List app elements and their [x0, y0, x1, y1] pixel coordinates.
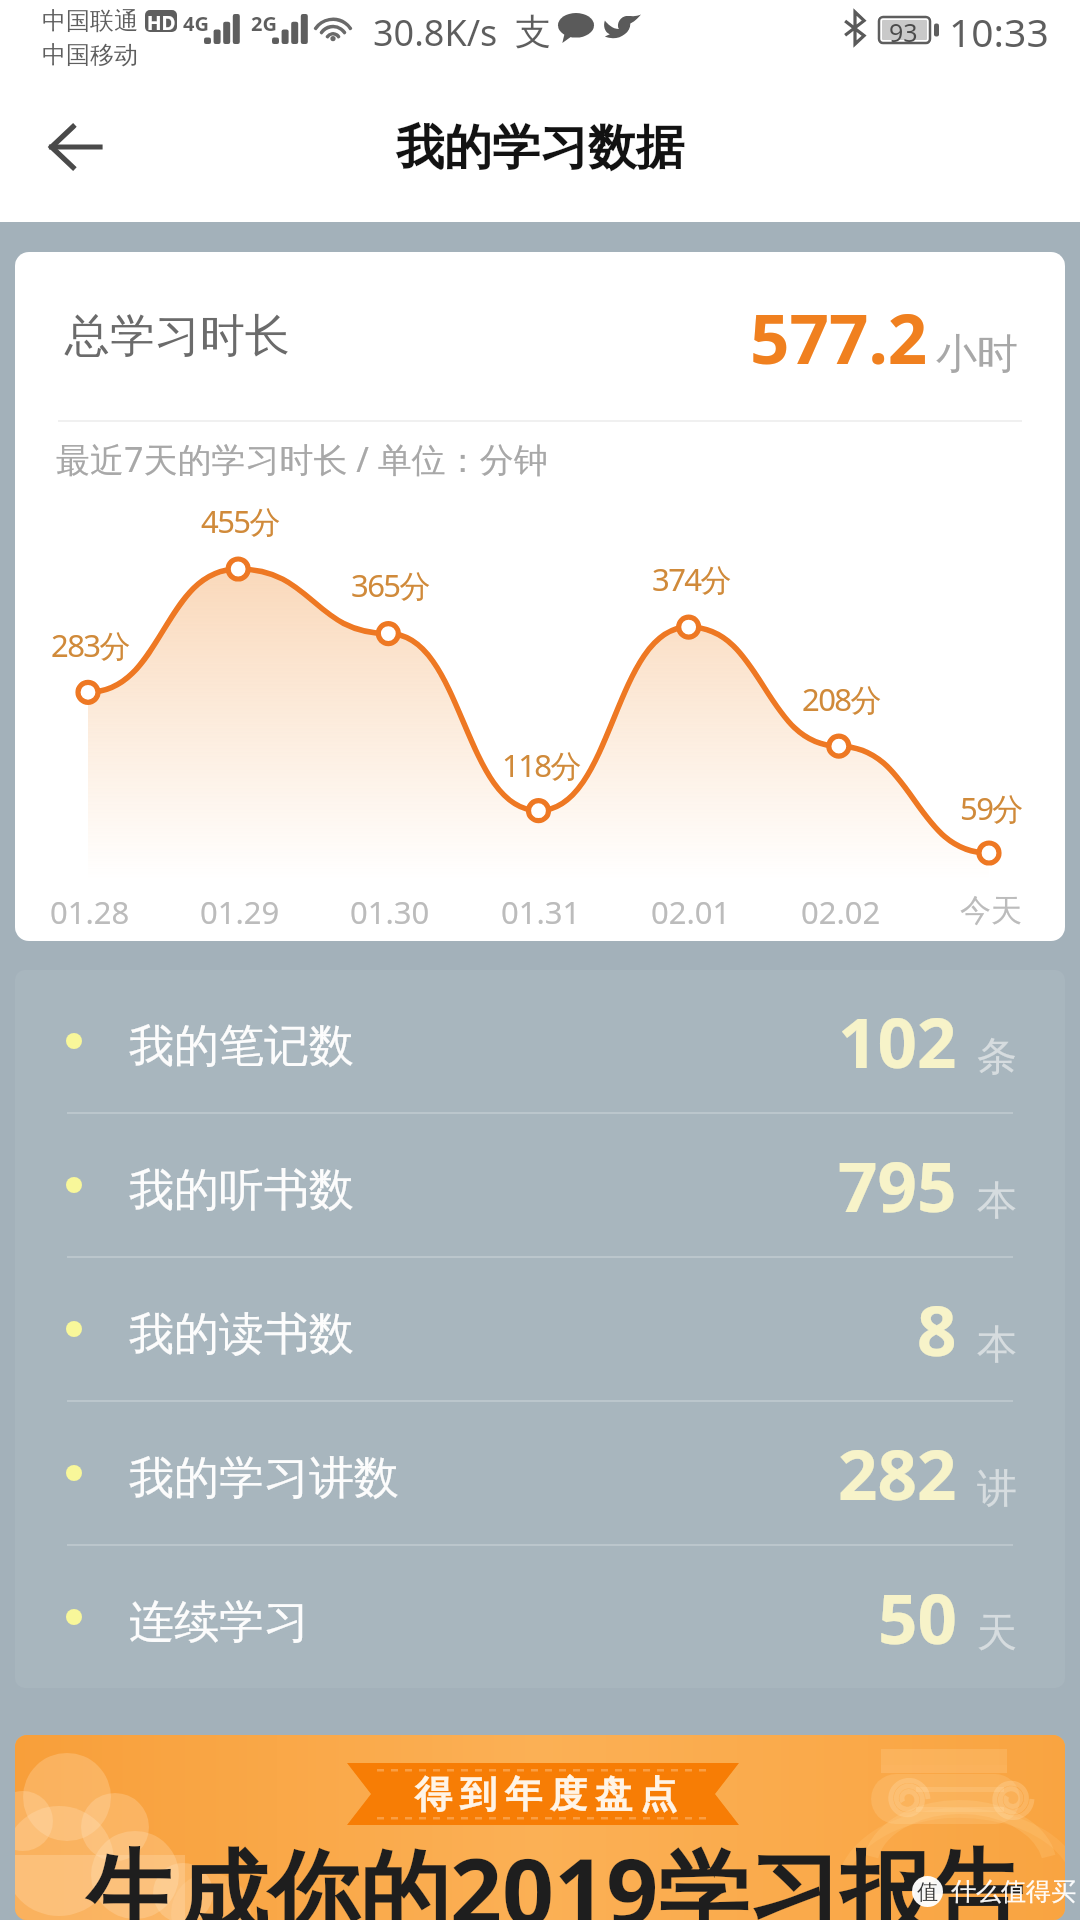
- staticText: HD: [147, 10, 176, 32]
- staticText: 30.8K/s: [373, 8, 498, 57]
- staticText: 374分: [652, 558, 730, 600]
- staticText: 我的学习讲数: [129, 1450, 399, 1507]
- staticText: 值: [917, 1879, 938, 1905]
- staticText: 本: [977, 1319, 1017, 1369]
- staticText: 01.29: [200, 891, 280, 933]
- button[interactable]: 我的笔记数: [15, 970, 1065, 1112]
- button[interactable]: 生成你的2019学习报告: [15, 1735, 1065, 1920]
- button[interactable]: 连续学习: [15, 1546, 1065, 1688]
- staticText: 01.28: [50, 891, 130, 933]
- staticText: 01.31: [501, 891, 581, 933]
- staticText: 93: [889, 15, 918, 43]
- button[interactable]: 我的读书数: [15, 1258, 1065, 1400]
- staticText: 连续学习: [129, 1594, 309, 1651]
- staticText: 中国移动: [42, 40, 138, 70]
- staticText: 小时: [936, 329, 1018, 381]
- staticText: 2G: [251, 10, 277, 37]
- staticText: 365分: [351, 564, 429, 606]
- staticText: 生成你的2019学习报告: [86, 1828, 1023, 1920]
- staticText: 10:33: [949, 5, 1049, 58]
- staticText: 条: [977, 1031, 1017, 1081]
- staticText: 795: [838, 1138, 957, 1232]
- staticText: 我的笔记数: [129, 1018, 354, 1075]
- staticText: 118分: [502, 744, 580, 786]
- staticText: 得到年度盘点: [411, 1771, 681, 1818]
- staticText: 455分: [201, 500, 279, 542]
- staticText: 什么值得买: [951, 1876, 1076, 1907]
- staticText: 283分: [51, 624, 129, 666]
- staticText: 102: [838, 994, 957, 1088]
- button[interactable]: 我的听书数: [15, 1114, 1065, 1256]
- staticText: 4G: [183, 10, 209, 37]
- staticText: 中国联通: [42, 6, 138, 36]
- staticText: 208分: [802, 678, 880, 720]
- staticText: 支: [515, 9, 551, 54]
- button[interactable]: 我的学习讲数: [15, 1402, 1065, 1544]
- staticText: 我的读书数: [129, 1306, 354, 1363]
- staticText: 最近7天的学习时长 / 单位：分钟: [56, 436, 548, 482]
- staticText: 02.01: [651, 891, 731, 933]
- staticText: 总学习时长: [65, 308, 290, 365]
- staticText: 我的学习数据: [396, 118, 684, 178]
- staticText: 讲: [977, 1463, 1017, 1513]
- staticText: 50: [878, 1570, 957, 1664]
- staticText: 59分: [960, 787, 1022, 829]
- staticText: 577.2: [750, 290, 928, 384]
- staticText: 01.30: [350, 891, 430, 933]
- staticText: 本: [977, 1175, 1017, 1225]
- staticText: 282: [838, 1426, 957, 1520]
- staticText: 02.02: [801, 891, 881, 933]
- staticText: 天: [977, 1607, 1017, 1657]
- button[interactable]: Back: [30, 107, 120, 187]
- staticText: 我的听书数: [129, 1162, 354, 1219]
- staticText: 8: [917, 1282, 957, 1376]
- staticText: 今天: [960, 891, 1022, 930]
